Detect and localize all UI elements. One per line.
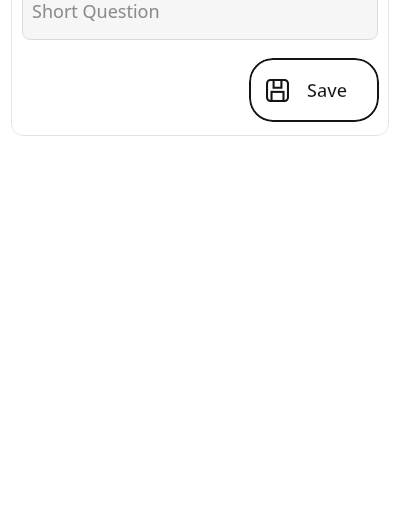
- staticText: Save: [307, 78, 348, 103]
- other: Save: [266, 79, 289, 102]
- button[interactable]: Short Question: [22, 0, 378, 40]
- staticText: Short Question: [32, 0, 160, 24]
- button[interactable]: Save: [249, 58, 379, 122]
